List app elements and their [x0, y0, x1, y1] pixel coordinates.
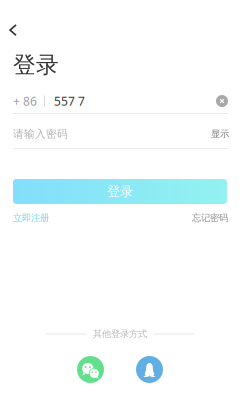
button[interactable]: 忘记密码 [192, 212, 228, 224]
button[interactable]: 立即注册 [13, 212, 49, 224]
staticText: 忘记密码 [192, 212, 228, 224]
button[interactable]: Sign in with QQ [136, 356, 163, 383]
button[interactable]: 显示 [211, 128, 229, 140]
button[interactable]: Back [0, 15, 27, 45]
button[interactable]: 登录 [13, 179, 227, 204]
staticText: 登录 [13, 51, 59, 79]
staticText: 557 7 [54, 93, 85, 109]
staticText: 登录 [107, 183, 133, 200]
staticText: 立即注册 [13, 212, 49, 224]
staticText: 其他登录方式 [93, 328, 147, 340]
staticText: 显示 [211, 128, 229, 140]
staticText: 请输入密码 [13, 127, 68, 140]
button[interactable]: Clear phone number [210, 92, 228, 110]
staticText: + 86 [13, 93, 37, 109]
button[interactable]: Sign in with WeChat [77, 356, 104, 383]
